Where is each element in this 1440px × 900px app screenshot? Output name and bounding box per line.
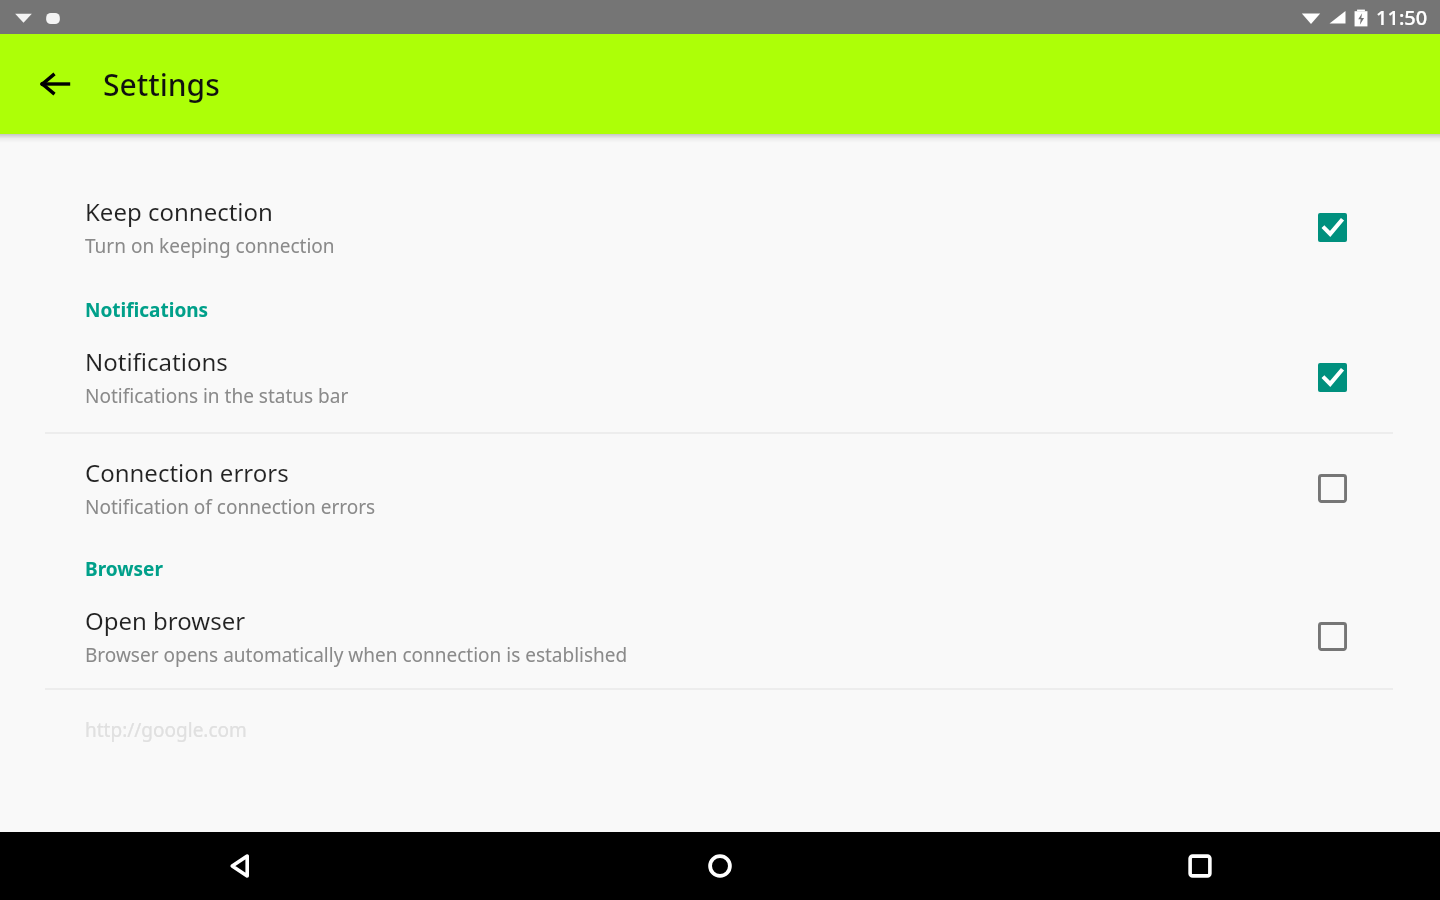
staticText: Connection errors bbox=[85, 456, 289, 489]
staticText: Notifications bbox=[85, 297, 209, 323]
staticText: Notifications bbox=[85, 345, 228, 378]
button[interactable]: Home bbox=[480, 832, 960, 900]
button[interactable]: Keep connection bbox=[0, 195, 1440, 259]
staticText: 11:50 bbox=[1376, 4, 1428, 31]
button[interactable]: http://google.com bbox=[0, 717, 1440, 743]
button[interactable]: Back bbox=[0, 832, 480, 900]
button[interactable]: Checked bbox=[1310, 205, 1354, 249]
staticText: Settings bbox=[103, 64, 220, 105]
button[interactable]: Recent apps bbox=[960, 832, 1440, 900]
staticText: http://google.com bbox=[85, 717, 247, 743]
button[interactable]: Unchecked bbox=[1310, 466, 1354, 510]
button[interactable]: Open browser bbox=[0, 604, 1440, 668]
staticText: Notifications in the status bar bbox=[85, 383, 349, 409]
staticText: Notification of connection errors bbox=[85, 494, 376, 520]
button[interactable]: Unchecked bbox=[1310, 614, 1354, 658]
button[interactable]: Back bbox=[24, 53, 86, 115]
staticText: Browser bbox=[85, 556, 163, 582]
button[interactable]: Notifications bbox=[0, 345, 1440, 409]
staticText: Browser opens automatically when connect… bbox=[85, 642, 628, 668]
staticText: Keep connection bbox=[85, 195, 273, 228]
button[interactable]: Connection errors bbox=[0, 456, 1440, 520]
staticText: Turn on keeping connection bbox=[85, 233, 335, 259]
staticText: Open browser bbox=[85, 604, 246, 637]
button[interactable]: Checked bbox=[1310, 355, 1354, 399]
